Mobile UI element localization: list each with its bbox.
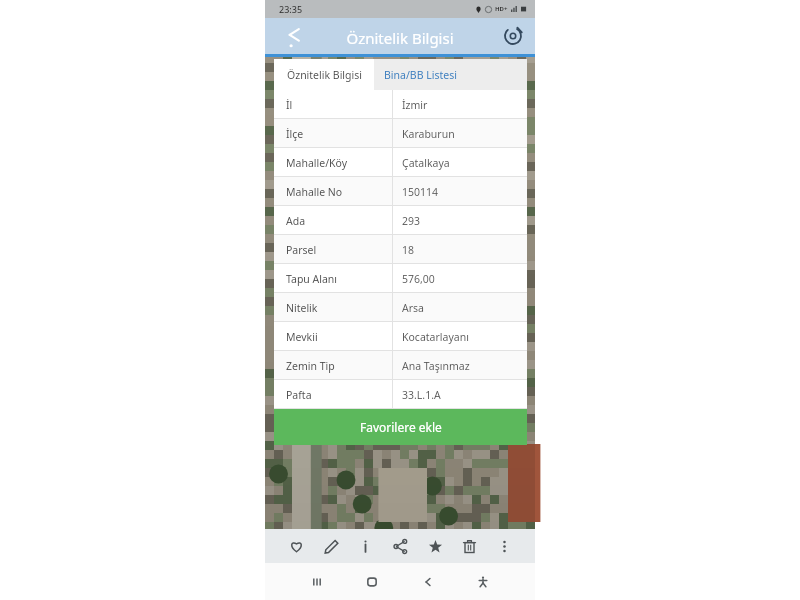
button[interactable]: Ada — [274, 206, 527, 235]
button[interactable]: Öznitelik Bilgisi — [274, 59, 374, 90]
button[interactable]: Favorite — [285, 535, 307, 557]
button[interactable]: Mevkii — [274, 322, 527, 351]
button[interactable]: Share — [389, 535, 411, 557]
button[interactable]: İl — [274, 90, 527, 119]
staticText: Favorilere ekle — [360, 419, 442, 435]
staticText: Tapu Alanı — [286, 272, 338, 286]
button[interactable]: Edit — [320, 535, 342, 557]
button[interactable]: Info — [354, 535, 376, 557]
button[interactable]: Delete — [458, 535, 480, 557]
staticText: Ada — [286, 214, 306, 228]
staticText: Zemin Tip — [286, 359, 335, 373]
staticText: Mahalle No — [286, 185, 343, 199]
staticText: 150114 — [402, 185, 439, 199]
staticText: Nitelik — [286, 301, 318, 315]
button[interactable]: Zemin Tip — [274, 351, 527, 380]
staticText: Mahalle/Köy — [286, 156, 348, 170]
staticText: İl — [286, 98, 293, 112]
button[interactable]: Mahalle No — [274, 177, 527, 206]
button[interactable]: Bina/BB Listesi — [374, 59, 527, 90]
staticText: 23:35 — [279, 3, 303, 15]
staticText: Arsa — [402, 301, 424, 315]
staticText: Parsel — [286, 243, 317, 257]
button[interactable]: Pafta — [274, 380, 527, 409]
staticText: İzmir — [402, 98, 428, 112]
button[interactable]: Parsel — [274, 235, 527, 264]
staticText: Kocatarlayanı — [402, 330, 469, 344]
staticText: Mevkii — [286, 330, 318, 344]
staticText: Öznitelik Bilgisi — [346, 28, 454, 48]
button[interactable]: Nitelik — [274, 293, 527, 322]
staticText: Çatalkaya — [402, 156, 450, 170]
button[interactable]: Recents — [305, 570, 329, 594]
staticText: 33.L.1.A — [402, 388, 441, 402]
staticText: Ana Taşınmaz — [402, 359, 470, 373]
staticText: Karaburun — [402, 127, 455, 141]
staticText: 576,00 — [402, 272, 435, 286]
staticText: Öznitelik Bilgisi — [287, 68, 362, 82]
button[interactable]: More options — [493, 535, 515, 557]
button[interactable]: İlçe — [274, 119, 527, 148]
staticText: HD+ — [495, 5, 508, 13]
button[interactable]: Mahalle/Köy — [274, 148, 527, 177]
staticText: 18 — [402, 243, 415, 257]
button[interactable]: Back — [416, 570, 440, 594]
button[interactable]: Accessibility — [471, 570, 495, 594]
button[interactable]: Star — [424, 535, 446, 557]
staticText: İlçe — [286, 127, 304, 141]
button[interactable]: Back — [281, 25, 303, 47]
staticText: Bina/BB Listesi — [384, 68, 457, 82]
staticText: Pafta — [286, 388, 312, 402]
button[interactable]: Tapu Alanı — [274, 264, 527, 293]
button[interactable]: Favorilere ekle — [274, 409, 527, 445]
staticText: 293 — [402, 214, 421, 228]
button[interactable]: Refresh — [503, 26, 523, 46]
button[interactable]: Home — [360, 570, 384, 594]
